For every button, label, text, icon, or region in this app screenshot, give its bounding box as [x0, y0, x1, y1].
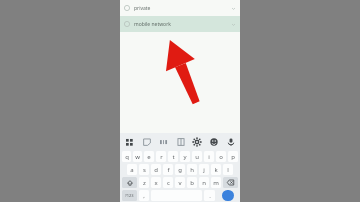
- staticText: c: [167, 179, 170, 187]
- button[interactable]: ?123: [122, 190, 137, 201]
- staticText: n: [202, 179, 206, 187]
- button[interactable]: m: [211, 177, 221, 188]
- staticText: t: [172, 153, 175, 161]
- button[interactable]: g: [175, 164, 185, 175]
- button[interactable]: u: [192, 151, 202, 162]
- staticText: u: [195, 153, 199, 161]
- button[interactable]: t: [168, 151, 178, 162]
- staticText: e: [147, 153, 151, 161]
- staticText: a: [130, 166, 134, 174]
- staticText: ,: [143, 192, 145, 200]
- button[interactable]: c: [163, 177, 173, 188]
- button[interactable]: d: [151, 164, 161, 175]
- button[interactable]: f: [163, 164, 173, 175]
- button[interactable]: .: [204, 190, 215, 201]
- staticText: d: [154, 166, 158, 174]
- button[interactable]: Apps: [123, 135, 136, 148]
- staticText: q: [125, 153, 129, 161]
- staticText: x: [154, 179, 158, 187]
- button[interactable]: Enter: [222, 190, 234, 201]
- button[interactable]: z: [139, 177, 149, 188]
- button[interactable]: y: [180, 151, 190, 162]
- button[interactable]: x: [151, 177, 161, 188]
- button[interactable]: p: [228, 151, 238, 162]
- button[interactable]: s: [139, 164, 149, 175]
- staticText: p: [231, 153, 235, 161]
- button[interactable]: Emoji: [207, 135, 220, 148]
- button[interactable]: Voice input: [224, 135, 237, 148]
- staticText: y: [183, 153, 187, 161]
- staticText: w: [135, 153, 140, 161]
- staticText: .: [209, 192, 211, 200]
- button[interactable]: private: [120, 0, 240, 16]
- staticText: mobile network: [134, 21, 171, 28]
- staticText: i: [208, 153, 210, 161]
- staticText: j: [203, 166, 205, 174]
- button[interactable]: Clipboard: [174, 135, 187, 148]
- button[interactable]: a: [127, 164, 137, 175]
- staticText: z: [143, 179, 146, 187]
- staticText: l: [227, 166, 229, 174]
- staticText: ?123: [125, 193, 134, 198]
- button[interactable]: ,: [139, 190, 149, 201]
- button[interactable]: v: [175, 177, 185, 188]
- button[interactable]: l: [223, 164, 233, 175]
- button[interactable]: k: [211, 164, 221, 175]
- staticText: g: [178, 166, 182, 174]
- button[interactable]: Settings: [190, 135, 203, 148]
- button[interactable]: q: [122, 151, 131, 162]
- button[interactable]: Backspace: [223, 177, 238, 188]
- staticText: b: [190, 179, 194, 187]
- staticText: s: [143, 166, 146, 174]
- staticText: private: [134, 5, 151, 12]
- button[interactable]: w: [133, 151, 142, 162]
- button[interactable]: h: [187, 164, 197, 175]
- staticText: f: [167, 166, 170, 174]
- button[interactable]: i: [204, 151, 214, 162]
- button[interactable]: GIF: [157, 135, 170, 148]
- staticText: m: [213, 179, 219, 187]
- button[interactable]: mobile network: [120, 16, 240, 32]
- button[interactable]: e: [144, 151, 154, 162]
- button[interactable]: b: [187, 177, 197, 188]
- staticText: o: [219, 153, 223, 161]
- staticText: k: [214, 166, 218, 174]
- button[interactable]: Shift: [122, 177, 137, 188]
- button[interactable]: r: [156, 151, 166, 162]
- staticText: v: [178, 179, 182, 187]
- button[interactable]: o: [216, 151, 226, 162]
- staticText: r: [160, 153, 163, 161]
- button[interactable]: n: [199, 177, 209, 188]
- button[interactable]: j: [199, 164, 209, 175]
- staticText: h: [190, 166, 194, 174]
- button[interactable]: Stickers: [140, 135, 153, 148]
